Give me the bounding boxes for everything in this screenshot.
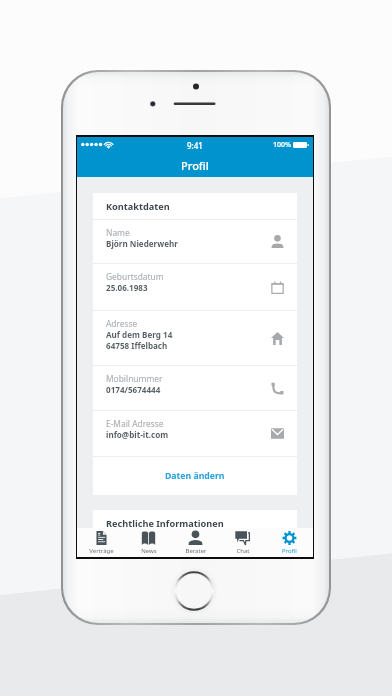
staticText: Chat — [236, 547, 250, 555]
other: E-Mail Adresse — [271, 427, 284, 440]
staticText: Profil — [181, 158, 209, 173]
button[interactable]: Verträge — [77, 528, 125, 557]
staticText: Adresse — [106, 318, 138, 329]
staticText: 100% — [273, 140, 291, 150]
button[interactable]: Chat — [219, 528, 266, 557]
button[interactable]: Adresse — [93, 311, 297, 365]
staticText: 64758 Iffelbach — [106, 340, 168, 351]
button[interactable]: Geburtsdatum — [93, 264, 297, 310]
staticText: 25.06.1983 — [106, 282, 148, 293]
staticText: 9:41 — [187, 140, 203, 151]
staticText: 0174/5674444 — [106, 384, 161, 395]
staticText: Björn Niederwehr — [106, 238, 178, 249]
other: Geburtsdatum — [271, 281, 284, 294]
staticText: Kontaktdaten — [106, 200, 170, 213]
staticText: Geburtsdatum — [106, 271, 164, 282]
staticText: Auf dem Berg 14 — [106, 329, 173, 340]
button[interactable]: Daten ändern — [93, 457, 297, 495]
staticText: Mobilnummer — [106, 373, 163, 384]
button[interactable]: Profil — [266, 528, 313, 557]
staticText: info@bit-it.com — [106, 429, 169, 440]
button[interactable]: Mobilnummer — [93, 366, 297, 410]
staticText: Verträge — [89, 547, 114, 555]
staticText: Daten ändern — [165, 470, 225, 482]
button[interactable]: Name — [93, 220, 297, 263]
staticText: Profil — [282, 547, 297, 555]
other: Mobilnummer — [271, 382, 284, 395]
staticText: News — [141, 547, 157, 555]
button[interactable]: News — [125, 528, 172, 557]
staticText: Berater — [185, 547, 207, 555]
staticText: Rechtliche Informationen — [106, 517, 224, 530]
staticText: Name — [106, 227, 130, 238]
button[interactable]: E-Mail Adresse — [93, 411, 297, 456]
staticText: E-Mail Adresse — [106, 418, 164, 429]
other: Name — [271, 235, 284, 248]
button[interactable]: Berater — [172, 528, 219, 557]
other: Adresse — [271, 332, 284, 345]
